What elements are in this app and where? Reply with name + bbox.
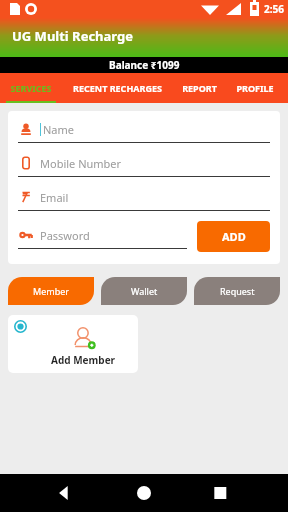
button[interactable]: Home [114,474,174,512]
staticText: Name [43,122,75,137]
button[interactable]: Balance ₹1099 [0,57,288,73]
button[interactable]: Back [40,474,60,512]
staticText: UG Multi Recharge [12,27,134,45]
staticText: Email [40,190,69,205]
staticText: PROFILE [236,82,274,94]
button[interactable]: SERVICES [0,73,62,103]
button[interactable]: Member [8,277,94,305]
button[interactable]: ADD [197,221,270,252]
staticText: Add Member [51,353,116,367]
button[interactable]: REPORT [172,73,227,103]
staticText: RECENT RECHARGES [73,82,162,94]
staticText: Password [40,228,90,243]
staticText: REPORT [182,82,217,94]
staticText: Mobile Number [40,156,122,171]
button[interactable]: Add Member [8,315,138,373]
button[interactable]: Wallet [101,277,187,305]
button[interactable]: PROFILE [227,73,282,103]
staticText: Wallet [131,285,158,297]
staticText: ADD [222,229,246,244]
staticText: 2:56 [264,2,284,16]
staticText: Request [220,285,255,297]
staticText: Member [33,285,69,297]
button[interactable]: RECENT RECHARGES [62,73,172,103]
button[interactable]: Request [194,277,280,305]
staticText: SERVICES [10,82,52,94]
staticText: Balance ₹1099 [109,58,180,72]
